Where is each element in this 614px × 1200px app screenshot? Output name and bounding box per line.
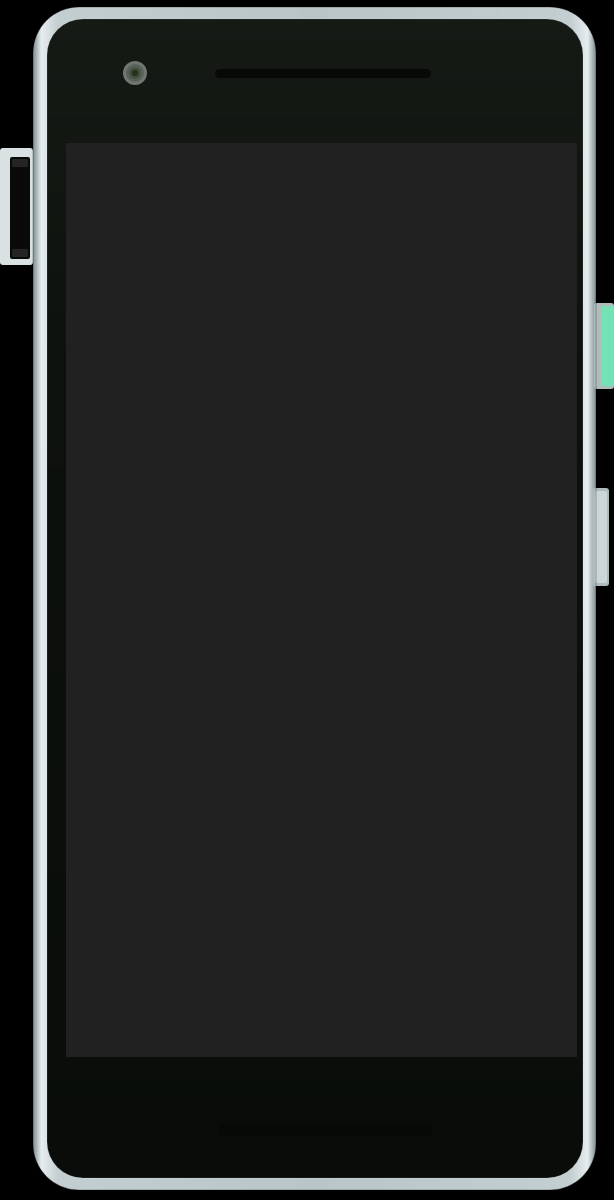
button[interactable]: Phone screen <box>0 0 614 1200</box>
